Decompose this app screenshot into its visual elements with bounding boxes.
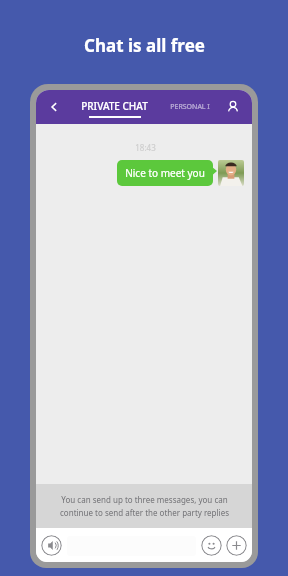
- button[interactable]: Back: [40, 93, 68, 121]
- staticText: Chat is all free: [84, 34, 205, 57]
- button[interactable]: Voice message: [41, 535, 62, 556]
- staticText: 18:43: [135, 142, 156, 153]
- button[interactable]: Profile: [220, 94, 246, 120]
- staticText: You can send up to three messages, you c…: [61, 494, 228, 505]
- staticText: PERSONAL I: [170, 102, 210, 112]
- staticText: continue to send after the other party r…: [60, 507, 229, 518]
- button[interactable]: Emoji: [201, 535, 222, 556]
- staticText: PRIVATE CHAT: [81, 99, 148, 113]
- button[interactable]: Nice to meet you: [117, 160, 213, 186]
- button[interactable]: Avatar: [218, 160, 244, 186]
- button[interactable]: PERSONAL I: [166, 102, 214, 112]
- button[interactable]: PRIVATE CHAT: [75, 96, 154, 118]
- button[interactable]: Add attachment: [226, 535, 247, 556]
- staticText: Nice to meet you: [125, 166, 205, 180]
